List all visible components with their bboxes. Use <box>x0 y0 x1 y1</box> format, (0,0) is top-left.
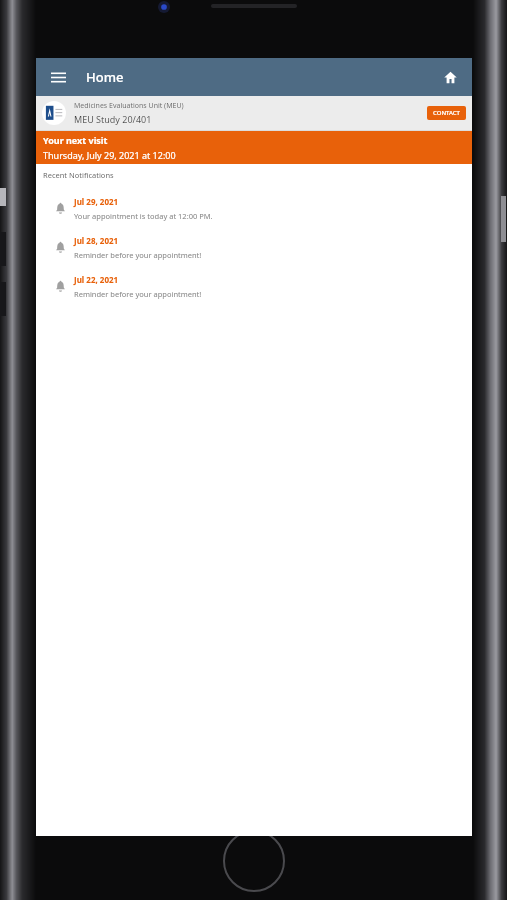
button[interactable]: CONTACT <box>427 106 466 120</box>
button[interactable]: Jul 29, 2021 <box>36 189 472 228</box>
staticText: Thursday, July 29, 2021 at 12:00 <box>43 149 176 161</box>
button[interactable]: Medicines Evaluations Unit (MEU) <box>36 96 472 130</box>
staticText: Reminder before your appointment! <box>74 289 202 299</box>
staticText: Medicines Evaluations Unit (MEU) <box>74 101 184 111</box>
staticText: Home <box>86 68 124 86</box>
button[interactable]: Home <box>436 63 464 91</box>
staticText: Reminder before your appointment! <box>74 250 202 260</box>
button[interactable]: Open navigation menu <box>42 61 74 93</box>
button[interactable]: Your next visit <box>36 131 472 164</box>
staticText: Your next visit <box>43 134 108 146</box>
staticText: Jul 28, 2021 <box>74 235 119 246</box>
staticText: Jul 22, 2021 <box>74 274 119 285</box>
button[interactable]: Jul 22, 2021 <box>36 267 472 306</box>
staticText: CONTACT <box>433 109 460 117</box>
staticText: Recent Notifications <box>43 170 114 180</box>
staticText: Jul 29, 2021 <box>74 196 119 207</box>
button[interactable]: Jul 28, 2021 <box>36 228 472 267</box>
staticText: Your appointment is today at 12:00 PM. <box>74 211 213 221</box>
staticText: MEU Study 20/401 <box>74 113 152 125</box>
